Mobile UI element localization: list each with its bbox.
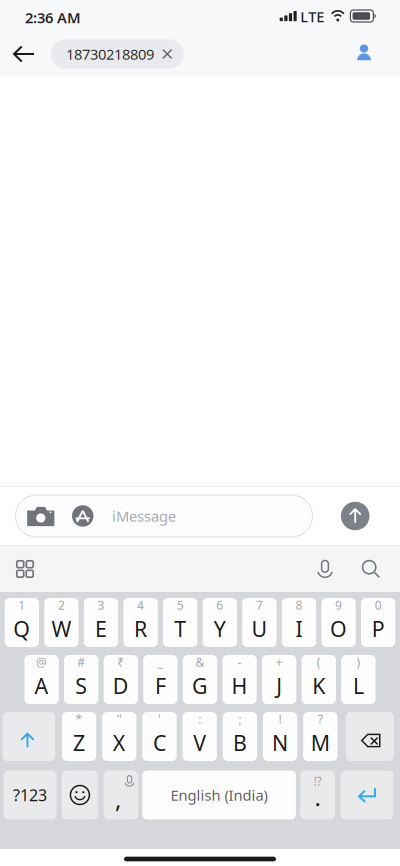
- button[interactable]: Back: [9, 37, 39, 71]
- button[interactable]: Search: [352, 550, 390, 588]
- button[interactable]: Voice input: [306, 550, 344, 588]
- button[interactable]: Contact info: [349, 37, 379, 71]
- button[interactable]: 6: [203, 598, 237, 647]
- button[interactable]: 5: [163, 598, 197, 647]
- button[interactable]: ': [142, 712, 177, 761]
- staticText: @: [36, 654, 47, 670]
- button[interactable]: -: [222, 655, 257, 704]
- button[interactable]: Camera: [27, 506, 54, 526]
- staticText: (: [317, 654, 321, 670]
- staticText: Z: [73, 728, 85, 757]
- staticText: D: [113, 671, 129, 700]
- staticText: ': [158, 711, 161, 727]
- button[interactable]: 0: [361, 598, 395, 647]
- staticText: V: [193, 728, 206, 757]
- staticText: 2:36 AM: [25, 8, 81, 27]
- staticText: !?: [314, 773, 322, 789]
- staticText: #: [77, 654, 85, 670]
- staticText: 6: [216, 597, 223, 613]
- staticText: M: [311, 728, 330, 757]
- staticText: B: [233, 728, 247, 757]
- button[interactable]: ₹: [104, 655, 138, 704]
- button[interactable]: [62, 770, 98, 819]
- staticText: F: [155, 671, 166, 700]
- staticText: W: [51, 614, 71, 643]
- button[interactable]: English (India): [142, 770, 296, 819]
- staticText: A: [35, 671, 49, 700]
- staticText: iMessage: [112, 506, 176, 526]
- button[interactable]: ?123: [3, 770, 57, 819]
- button[interactable]: ): [341, 655, 375, 704]
- staticText: :: [198, 711, 201, 727]
- button[interactable]: 18730218809: [51, 39, 184, 69]
- button[interactable]: 9: [321, 598, 356, 647]
- button[interactable]: Apps: [72, 505, 93, 527]
- staticText: 5: [177, 597, 184, 613]
- staticText: Y: [214, 614, 226, 643]
- staticText: -: [238, 654, 242, 670]
- staticText: _: [158, 654, 163, 670]
- button[interactable]: [3, 712, 55, 761]
- staticText: J: [276, 671, 282, 700]
- button[interactable]: :: [183, 712, 217, 761]
- button[interactable]: [346, 712, 394, 761]
- button[interactable]: Keyboard layouts: [6, 550, 44, 588]
- button[interactable]: &: [183, 655, 217, 704]
- staticText: ?: [318, 711, 323, 727]
- staticText: ,: [115, 783, 121, 815]
- staticText: 18730218809: [66, 44, 154, 64]
- staticText: 3: [97, 597, 104, 613]
- staticText: 2: [58, 597, 65, 613]
- button[interactable]: ?: [303, 712, 337, 761]
- button[interactable]: ": [102, 712, 136, 761]
- staticText: K: [312, 671, 325, 700]
- staticText: U: [251, 614, 267, 643]
- button[interactable]: #: [64, 655, 98, 704]
- button[interactable]: ,: [104, 770, 138, 819]
- staticText: N: [272, 728, 288, 757]
- staticText: G: [192, 671, 208, 700]
- staticText: LTE: [300, 7, 324, 26]
- button[interactable]: !: [263, 712, 297, 761]
- button[interactable]: 3: [84, 598, 118, 647]
- staticText: E: [95, 614, 107, 643]
- button[interactable]: 8: [282, 598, 316, 647]
- staticText: L: [353, 671, 364, 700]
- button[interactable]: !?: [300, 770, 335, 819]
- staticText: O: [330, 614, 347, 643]
- staticText: 7: [256, 597, 263, 613]
- staticText: !: [279, 711, 282, 727]
- staticText: P: [372, 614, 385, 643]
- staticText: 4: [137, 597, 144, 613]
- staticText: C: [153, 728, 166, 757]
- staticText: S: [75, 671, 87, 700]
- button[interactable]: ;: [223, 712, 257, 761]
- button[interactable]: [340, 770, 393, 819]
- staticText: 9: [335, 597, 342, 613]
- button[interactable]: @: [24, 655, 59, 704]
- staticText: 1: [18, 597, 25, 613]
- button[interactable]: 4: [123, 598, 158, 647]
- staticText: 0: [375, 597, 382, 613]
- staticText: I: [295, 614, 302, 643]
- staticText: T: [174, 614, 186, 643]
- button[interactable]: 7: [242, 598, 276, 647]
- staticText: ₹: [117, 654, 124, 670]
- button[interactable]: *: [62, 712, 96, 761]
- staticText: R: [134, 614, 147, 643]
- button[interactable]: Send: [341, 502, 369, 530]
- button[interactable]: 2: [44, 598, 78, 647]
- button[interactable]: +: [262, 655, 296, 704]
- button[interactable]: _: [143, 655, 177, 704]
- staticText: &: [195, 654, 204, 670]
- staticText: H: [232, 671, 248, 700]
- button[interactable]: (: [302, 655, 336, 704]
- staticText: ;: [238, 711, 241, 727]
- staticText: *: [76, 711, 83, 727]
- button[interactable]: 1: [5, 598, 39, 647]
- staticText: +: [276, 654, 283, 670]
- staticText: English (India): [171, 785, 268, 805]
- staticText: ": [117, 711, 122, 727]
- staticText: .: [315, 781, 321, 813]
- staticText: X: [113, 728, 126, 757]
